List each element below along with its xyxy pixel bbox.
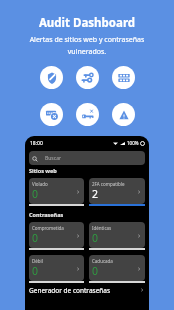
staticText: 0 [32,264,39,278]
staticText: Alertas de sitios web y contraseñas vuln… [16,35,158,56]
button[interactable]: Violado [29,178,84,206]
staticText: Generador de contraseñas [29,286,111,295]
staticText: Débil [32,258,43,264]
button[interactable]: 2FA compatible [89,178,145,206]
staticText: Contraseñas [29,211,64,218]
staticText: Audit Dashboard [0,15,174,31]
staticText: 0 [92,231,99,245]
staticText: Idénticas [92,225,112,231]
button[interactable]: Caducada [89,255,145,283]
staticText: 2 [92,187,99,201]
button[interactable]: Claves [76,66,99,89]
staticText: Comprometida [32,225,64,231]
button[interactable]: Alertas [112,103,135,126]
button[interactable]: Idénticas [89,222,145,250]
button[interactable]: Clave caducada [76,103,99,126]
staticText: Violado [32,181,48,187]
staticText: 2FA compatible [92,181,125,187]
button[interactable]: Buscar [29,151,145,165]
staticText: 0 [92,264,99,278]
button[interactable]: Débil [29,255,84,283]
button[interactable]: Generador de contraseñas [29,285,145,295]
button[interactable]: Comprometida [29,222,84,250]
staticText: 0 [32,231,39,245]
button[interactable]: Contraseña comprometida [40,103,63,126]
staticText: 100% [127,140,139,146]
staticText: Buscar [45,155,62,162]
staticText: 0 [32,187,39,201]
staticText: Sitios web [29,167,57,174]
staticText: Caducada [92,258,113,264]
button[interactable]: Servidores [112,66,135,89]
staticText: 18:00 [30,140,43,147]
button[interactable]: Sitios web seguros [40,66,63,89]
